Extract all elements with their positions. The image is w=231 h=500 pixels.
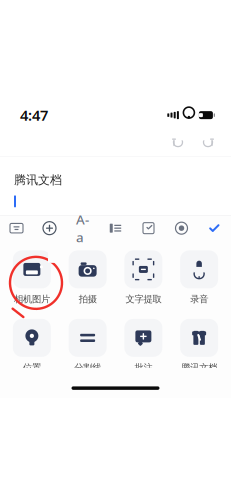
button[interactable]: 位置: [4, 319, 60, 373]
staticText: 腾讯文档: [181, 362, 217, 373]
button[interactable]: Checklist: [132, 216, 165, 244]
button[interactable]: Redo: [193, 130, 223, 154]
button[interactable]: Undo: [163, 130, 193, 154]
button[interactable]: Insert: [33, 216, 66, 244]
button[interactable]: 录音: [171, 250, 227, 305]
button[interactable]: Text style: [66, 216, 99, 244]
button[interactable]: History: [165, 216, 198, 244]
button[interactable]: 分割线: [60, 319, 116, 373]
button[interactable]: 腾讯文档: [171, 319, 227, 373]
staticText: 分割线: [74, 362, 101, 373]
button[interactable]: Keyboard: [0, 216, 33, 244]
staticText: Aa: [76, 210, 89, 246]
staticText: 批注: [134, 362, 152, 373]
staticText: 腾讯文档: [14, 173, 62, 187]
button[interactable]: 拍摄: [60, 250, 116, 305]
button[interactable]: 批注: [115, 319, 171, 373]
button[interactable]: Paragraph: [99, 216, 132, 244]
staticText: 文字提取: [125, 293, 161, 305]
button[interactable]: 文字提取: [115, 250, 171, 305]
button[interactable]: 相机图片: [4, 250, 60, 305]
button[interactable]: Done: [198, 216, 231, 244]
staticText: 录音: [190, 293, 208, 305]
staticText: 拍摄: [79, 293, 97, 305]
staticText: 相机图片: [14, 293, 50, 305]
staticText: 位置: [23, 362, 41, 373]
staticText: 4:47: [20, 105, 48, 125]
